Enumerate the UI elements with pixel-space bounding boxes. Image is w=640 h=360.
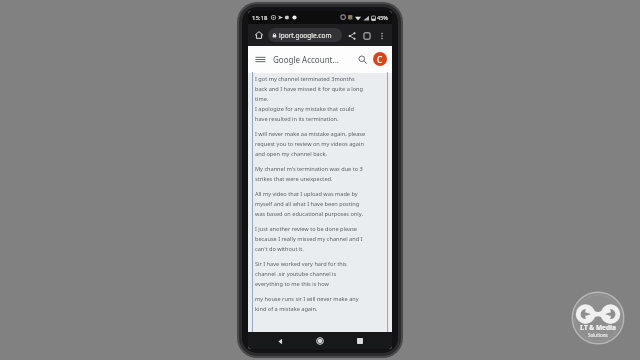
staticText: Solutions [588,332,608,338]
button[interactable]: Back [272,333,288,349]
button[interactable]: Account [373,52,387,66]
staticText: All my video that I upload was made by [255,190,358,198]
button[interactable]: Home [252,28,266,42]
staticText: my house runs sir I will never make any [255,295,359,303]
staticText: I got my channel terminated 3months [255,75,355,83]
staticText: because I really missed my channel and I [255,235,363,243]
staticText: everything to me this is how [255,280,329,288]
staticText: channel .sir youtube channel is [255,270,337,278]
staticText: strikes that were unexpected. [255,175,333,183]
button[interactable]: Menu [253,52,268,67]
staticText: I apologize for any mistake that could [255,105,354,113]
staticText: Sir I have worked very hard for this [255,260,347,268]
staticText: 15:18 [252,14,268,22]
staticText: C [377,54,383,65]
staticText: kind of a mistake again. [255,305,318,313]
staticText: back and I have missed it for quite a lo… [255,85,363,93]
button[interactable]: iport.google.com [268,28,342,42]
staticText: request you to review on my videos again [255,140,364,148]
staticText: My channel m's termination was due to 3 [255,165,363,173]
button[interactable]: Tabs [360,29,373,42]
button[interactable]: Home [312,333,328,349]
staticText: myself and all what I have been posting [255,200,360,208]
button[interactable]: Search [355,52,370,67]
staticText: I just another review to be done please [255,225,358,233]
staticText: iport.google.com [279,31,332,40]
staticText: was based on educational purposes only. [255,210,363,218]
staticText: Google Account... [273,54,339,65]
staticText: and open my channel back, [255,150,327,158]
staticText: 45% [377,14,388,21]
staticText: have resulted in its termination. [255,115,339,123]
button[interactable]: Recent apps [352,333,368,349]
button[interactable]: More options [375,29,388,42]
staticText: I.T & Media [580,323,616,332]
staticText: I will never make aa mistake again, plea… [255,130,366,138]
staticText: can't do without it. [255,245,304,253]
button[interactable]: Share [345,29,358,42]
staticText: time. [255,95,269,103]
